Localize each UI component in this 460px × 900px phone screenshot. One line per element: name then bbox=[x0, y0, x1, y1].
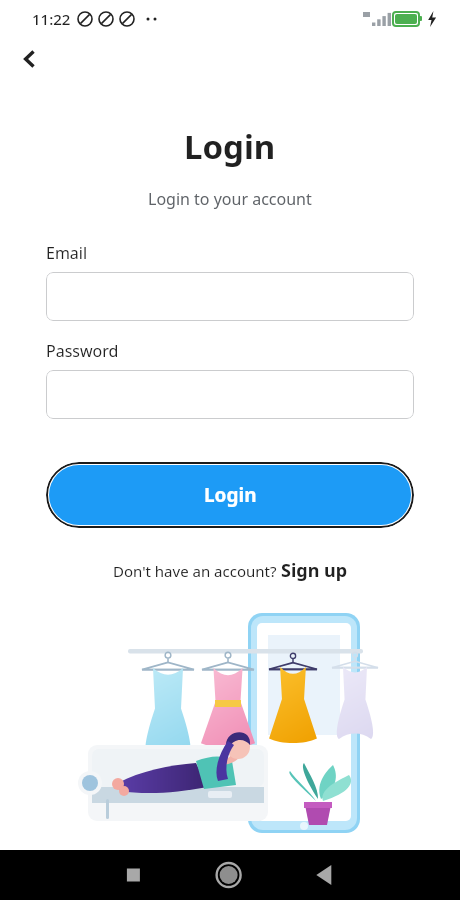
staticText: Don't have an account? bbox=[113, 561, 281, 581]
button[interactable]: Sign up bbox=[281, 558, 348, 583]
staticText: Email bbox=[46, 242, 88, 264]
staticText: 11:22 bbox=[32, 9, 71, 29]
button[interactable]: Recents bbox=[0, 850, 166, 900]
staticText: Password bbox=[46, 340, 119, 362]
button[interactable]: Login bbox=[49, 465, 411, 525]
button[interactable]: Home bbox=[180, 850, 281, 900]
staticText: Login to your account bbox=[148, 188, 312, 210]
button[interactable] bbox=[46, 272, 414, 321]
staticText: Login bbox=[204, 482, 257, 508]
button[interactable] bbox=[46, 370, 414, 419]
staticText: Sign up bbox=[281, 558, 348, 583]
button[interactable]: Back bbox=[294, 850, 460, 900]
button[interactable]: Back bbox=[8, 38, 52, 80]
staticText: Login bbox=[184, 124, 276, 169]
